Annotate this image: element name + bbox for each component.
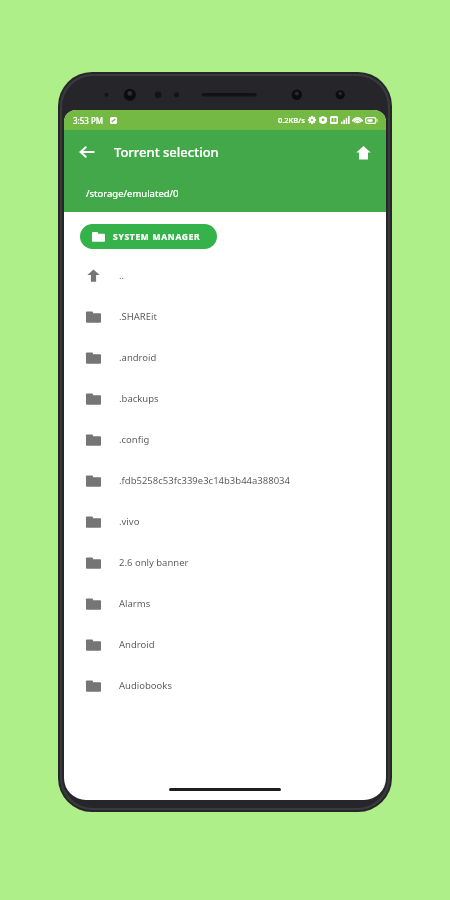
button[interactable]: Audiobooks [64,665,386,706]
button[interactable]: .backups [64,378,386,419]
staticText: .config [119,433,150,446]
staticText: SYSTEM MANAGER [113,231,201,243]
button[interactable]: Android [64,624,386,665]
staticText: .vivo [119,515,140,528]
button[interactable]: .SHAREit [64,296,386,337]
button[interactable]: .config [64,419,386,460]
staticText: .. [119,269,125,282]
button[interactable]: 2.6 only banner [64,542,386,583]
button[interactable]: .fdb5258c53fc339e3c14b3b44a388034 [64,460,386,501]
staticText: .SHAREit [119,310,157,323]
staticText: Torrent selection [114,143,219,161]
staticText: .backups [119,392,159,405]
button[interactable]: SYSTEM MANAGER [80,224,217,249]
staticText: Alarms [119,597,151,610]
staticText: Android [119,638,155,651]
button[interactable]: Alarms [64,583,386,624]
staticText: .fdb5258c53fc339e3c14b3b44a388034 [119,474,290,487]
staticText: 0.2KB/s [278,115,305,125]
button[interactable]: .. [64,255,386,296]
staticText: 3:53 PM [73,115,104,126]
staticText: .android [119,351,157,364]
staticText: /storage/emulated/0 [86,187,179,200]
staticText: 2.6 only banner [119,556,189,569]
staticText: Audiobooks [119,679,172,692]
button[interactable]: .android [64,337,386,378]
button[interactable]: .vivo [64,501,386,542]
button[interactable]: Back [70,135,104,169]
button[interactable]: Home [346,135,380,169]
